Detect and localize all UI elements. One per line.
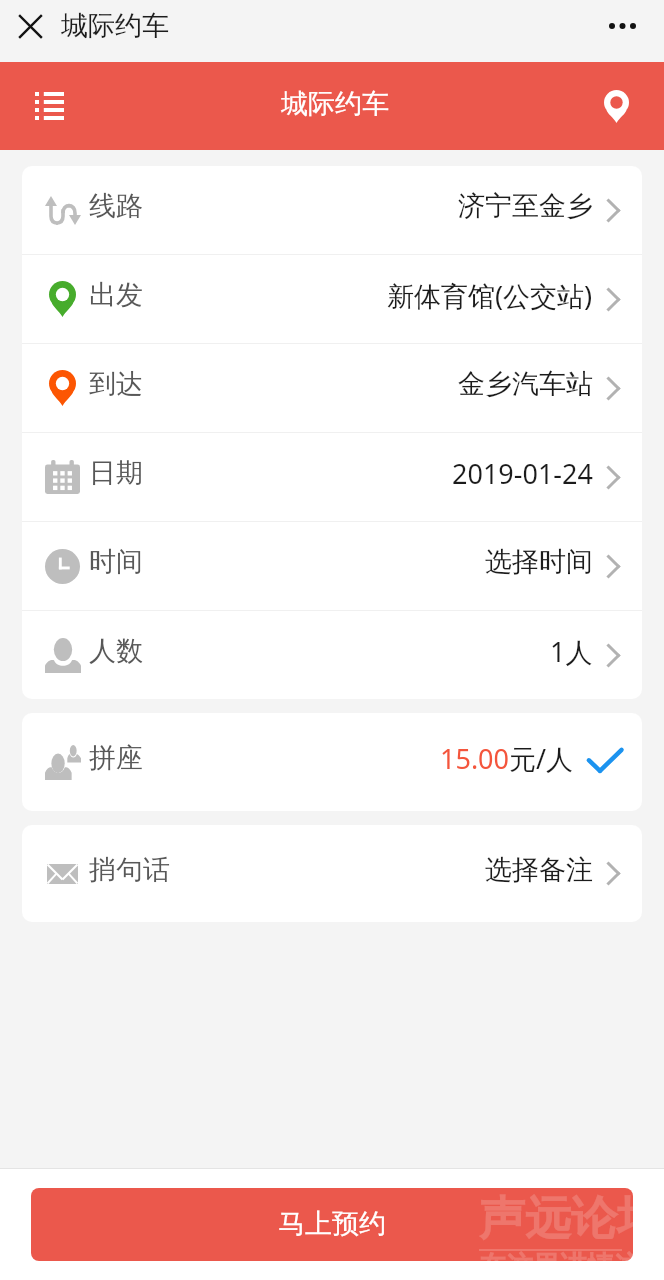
button[interactable]: More options [600,0,664,62]
button[interactable]: 日期 [22,433,642,521]
staticText: 济宁至金乡 [458,189,593,223]
staticText: 选择备注 [485,853,593,887]
staticText: 金乡汽车站 [458,367,593,401]
button[interactable]: 线路 [22,166,642,254]
staticText: 选择时间 [485,545,593,579]
button[interactable]: 人数 [22,611,642,699]
staticText: 拼座 [89,741,143,775]
staticText: 2019-01-24 [452,455,593,492]
staticText: 马上预约 [278,1207,386,1241]
staticText: 到达 [89,367,143,401]
staticText: 城际约车 [281,87,389,121]
staticText: 线路 [89,189,143,223]
staticText: 捎句话 [89,853,170,887]
button[interactable]: 出发 [22,255,642,343]
button[interactable]: 时间 [22,522,642,610]
staticText: 日期 [89,456,143,490]
staticText: 声远论坛 [479,1190,633,1248]
staticText: 人数 [89,634,143,668]
staticText: 城际约车 [61,9,169,43]
button[interactable]: Menu [18,75,80,137]
staticText: 15.00元/人 [440,740,574,777]
staticText: 在这里讲情这 [479,1249,633,1261]
button[interactable]: 到达 [22,344,642,432]
button[interactable]: Location [585,75,647,137]
button[interactable]: 捎句话 [22,825,642,922]
button[interactable]: Close [0,1,60,61]
staticText: 1人 [550,633,593,670]
button[interactable]: 声远论坛 [31,1188,633,1261]
staticText: 新体育馆(公交站) [387,277,593,314]
button[interactable]: 拼座 [22,713,642,811]
staticText: 时间 [89,545,143,579]
staticText: 出发 [89,278,143,312]
